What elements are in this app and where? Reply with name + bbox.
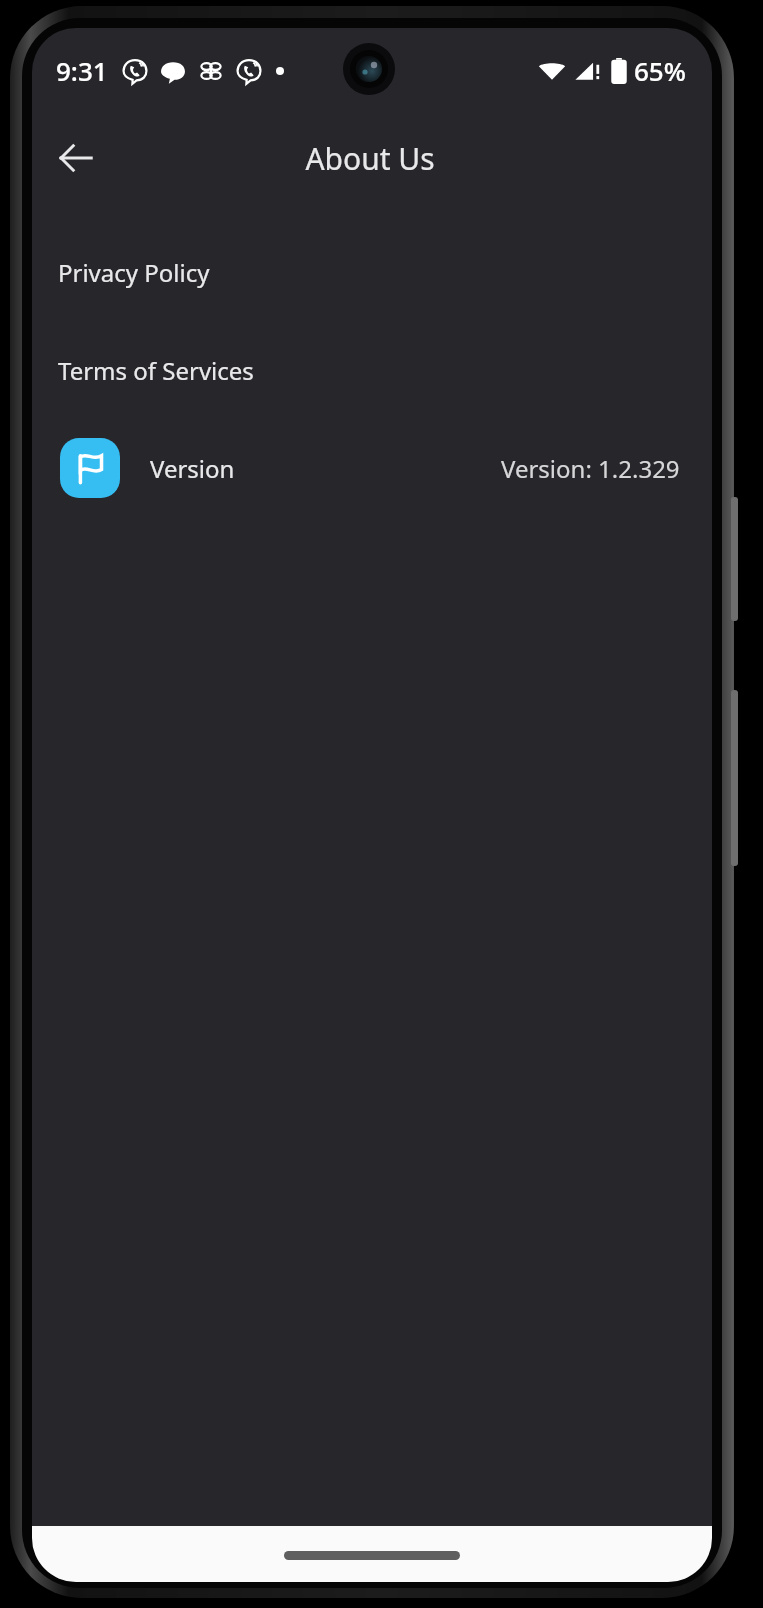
button[interactable]: Back	[38, 120, 114, 196]
button[interactable]: Version	[32, 436, 712, 500]
staticText: Version	[150, 452, 235, 485]
staticText: Terms of Services	[58, 354, 254, 387]
staticText: Version: 1.2.329	[501, 452, 680, 485]
staticText: 9:31	[56, 53, 108, 88]
button[interactable]: Privacy Policy	[32, 250, 712, 294]
staticText: Privacy Policy	[58, 256, 210, 289]
button[interactable]: Terms of Services	[32, 348, 712, 392]
staticText: 65%	[634, 53, 686, 88]
staticText: About Us	[305, 138, 435, 179]
